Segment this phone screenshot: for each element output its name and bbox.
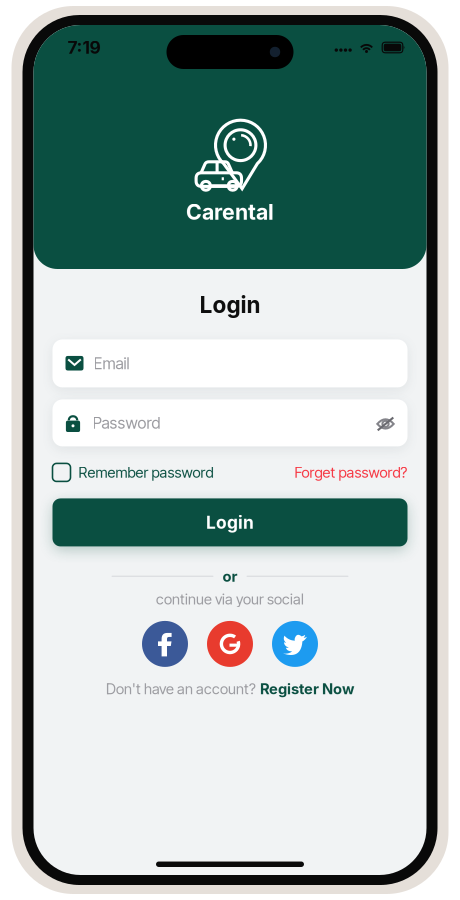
staticText: 7:19 xyxy=(67,37,100,58)
staticText: Remember password xyxy=(78,464,213,481)
staticText: Email xyxy=(93,354,129,373)
staticText: Carental xyxy=(186,199,274,225)
staticText: continue via your social xyxy=(156,590,304,608)
button[interactable]: Continue with Twitter xyxy=(272,621,318,667)
button[interactable]: Continue with Google xyxy=(207,621,253,667)
staticText: Login xyxy=(206,512,254,533)
button[interactable]: Forget password? xyxy=(294,464,407,481)
staticText: or xyxy=(222,567,237,585)
button[interactable]: Remember password xyxy=(52,463,213,481)
staticText: Login xyxy=(199,291,260,318)
staticText: Forget password? xyxy=(294,464,407,481)
staticText: Register Now xyxy=(260,680,354,698)
staticText: Password xyxy=(92,413,160,433)
button[interactable]: Login xyxy=(52,498,407,546)
button[interactable]: Show password xyxy=(375,416,393,430)
button[interactable]: Don't have an account? xyxy=(106,680,354,698)
button[interactable]: Continue with Facebook xyxy=(142,621,188,667)
staticText: Don't have an account? xyxy=(106,680,256,698)
